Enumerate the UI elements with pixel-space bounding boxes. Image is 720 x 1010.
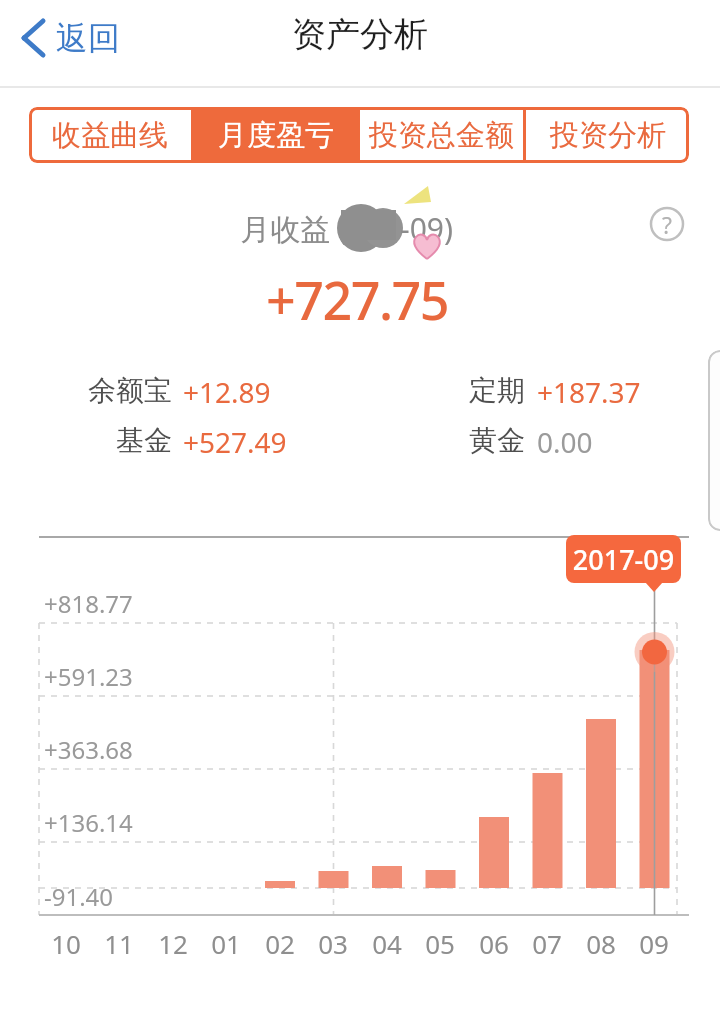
staticText: -09) <box>400 208 470 249</box>
staticText: -91.40 <box>44 880 164 912</box>
button[interactable]: 月度盈亏 <box>194 107 357 163</box>
staticText: 月收益 ( <box>235 208 347 249</box>
staticText: 02 <box>253 926 307 958</box>
staticText: 12 <box>146 926 200 958</box>
staticText: 01 <box>199 926 253 958</box>
staticText: 基金 <box>32 423 172 455</box>
staticText: +12.89 <box>183 373 343 405</box>
staticText: 10 <box>39 926 93 958</box>
staticText: 2017-09 <box>566 541 681 578</box>
staticText: 04 <box>360 926 414 958</box>
staticText: +591.23 <box>44 660 164 692</box>
staticText: 03 <box>306 926 360 958</box>
staticText: 余额宝 <box>32 373 172 405</box>
button[interactable]: 投资总金额 <box>360 107 523 163</box>
button[interactable]: 返回 <box>14 10 134 66</box>
staticText: 06 <box>467 926 521 958</box>
staticText: 08 <box>574 926 628 958</box>
staticText: +187.37 <box>537 373 697 405</box>
staticText: +527.49 <box>183 423 343 455</box>
staticText: 月度盈亏 <box>218 117 334 154</box>
staticText: ? <box>649 209 685 240</box>
button[interactable]: 收益曲线 <box>29 107 191 163</box>
staticText: 投资总金额 <box>369 117 514 154</box>
staticText: 黄金 <box>385 423 525 455</box>
staticText: 资产分析 <box>0 13 720 56</box>
button[interactable]: 投资分析 <box>526 107 689 163</box>
staticText: 11 <box>92 926 146 958</box>
staticText: +818.77 <box>44 587 164 619</box>
staticText: 投资分析 <box>550 117 666 154</box>
staticText: 定期 <box>385 373 525 405</box>
staticText: 07 <box>520 926 574 958</box>
button[interactable]: ? <box>649 206 685 242</box>
button[interactable] <box>708 350 720 531</box>
staticText: 05 <box>413 926 467 958</box>
staticText: +727.75 <box>266 264 449 326</box>
staticText: 收益曲线 <box>52 117 168 154</box>
staticText: 0.00 <box>537 423 657 455</box>
staticText: +363.68 <box>44 733 164 765</box>
staticText: +136.14 <box>44 806 164 838</box>
staticText: 09 <box>627 926 681 958</box>
staticText: 返回 <box>56 18 136 58</box>
